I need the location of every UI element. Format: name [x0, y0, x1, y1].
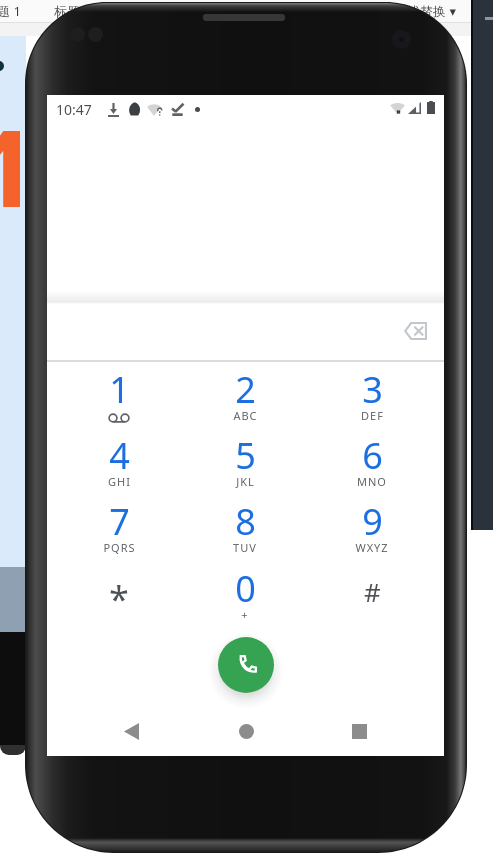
button[interactable]: Home	[222, 707, 270, 755]
staticText: 8	[235, 497, 256, 546]
staticText: 4	[109, 431, 130, 480]
staticText: 9	[362, 497, 383, 546]
staticText: 2	[235, 365, 256, 414]
button[interactable]: *	[57, 554, 181, 620]
button[interactable]: 1	[57, 355, 181, 421]
button[interactable]: 5	[183, 421, 307, 487]
button[interactable]: 9	[310, 487, 434, 553]
staticText: 5	[235, 431, 256, 480]
staticText: PQRS	[103, 540, 136, 555]
staticText: *	[109, 574, 129, 623]
button[interactable]: 3	[310, 355, 434, 421]
button[interactable]: 0	[183, 554, 307, 620]
staticText: 题 1	[0, 2, 21, 20]
staticText: TUV	[233, 540, 257, 555]
staticText: 标题 2	[54, 2, 91, 20]
staticText: 7	[109, 497, 130, 546]
staticText: 0	[235, 564, 256, 613]
button[interactable]: #	[310, 554, 434, 620]
staticText: ABC	[233, 408, 258, 423]
button[interactable]: Call	[218, 637, 274, 693]
button[interactable]: 2	[183, 355, 307, 421]
button[interactable]: 6	[310, 421, 434, 487]
staticText: WXYZ	[355, 540, 389, 555]
button[interactable]: 7	[57, 487, 181, 553]
staticText: +	[241, 607, 249, 622]
staticText: 1	[109, 365, 130, 414]
button[interactable]: 4	[57, 421, 181, 487]
staticText: JKL	[236, 474, 255, 489]
staticText: 查找替换 ▾	[394, 2, 456, 20]
button[interactable]: Backspace	[393, 309, 437, 353]
button[interactable]: 8	[183, 487, 307, 553]
staticText: MNO	[357, 474, 387, 489]
staticText: #	[364, 574, 381, 609]
staticText: 3	[362, 365, 383, 414]
staticText: GHI	[108, 474, 131, 489]
button[interactable]: Back	[107, 707, 155, 755]
staticText: 10:47	[56, 100, 92, 119]
staticText: DEF	[361, 408, 384, 423]
staticText: 6	[362, 431, 383, 480]
button[interactable]: Recents	[335, 707, 383, 755]
